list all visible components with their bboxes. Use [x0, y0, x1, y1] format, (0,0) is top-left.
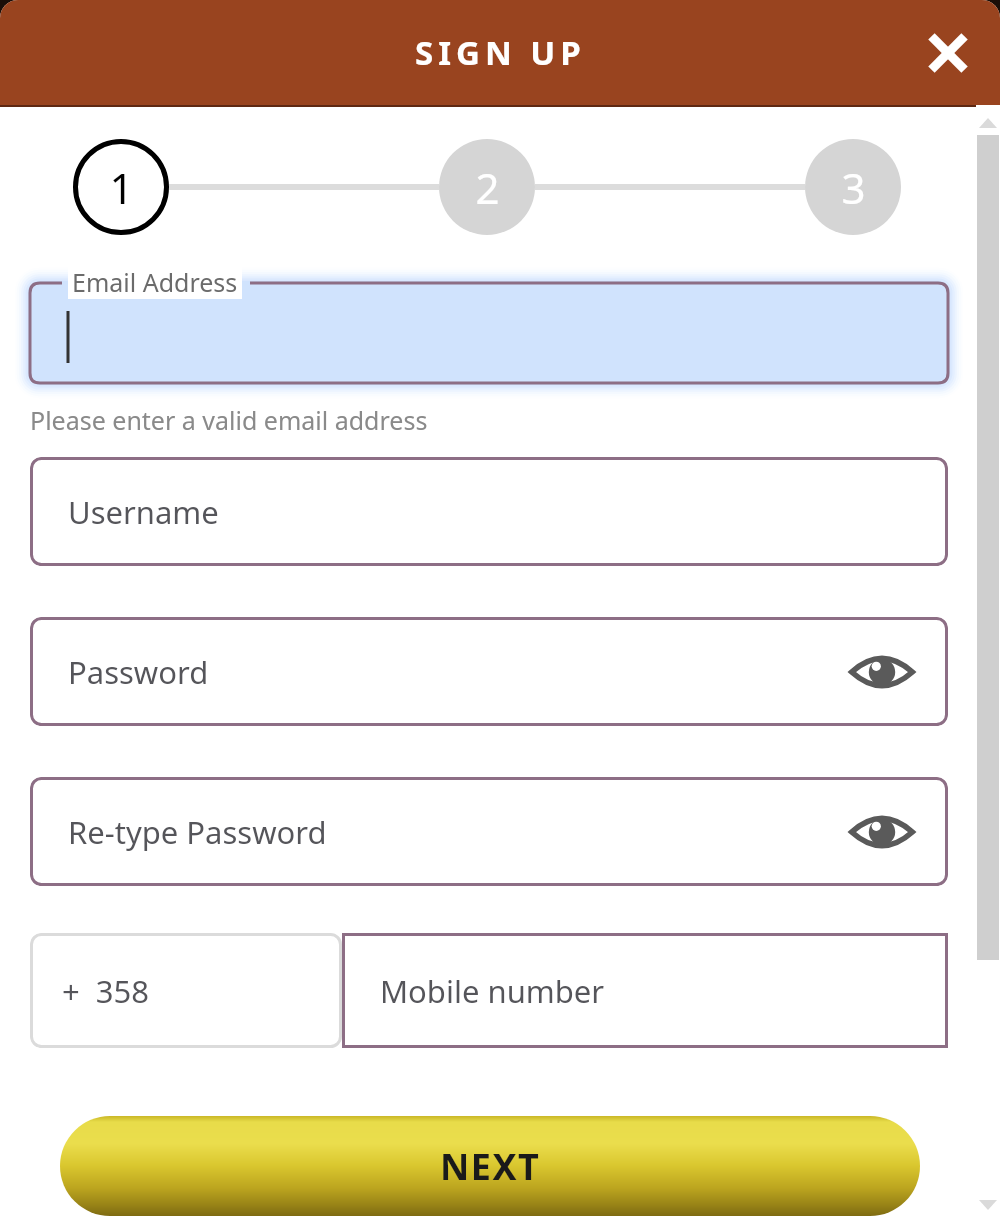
staticText: Re-type Password	[68, 811, 327, 853]
staticText: Email Address	[72, 265, 238, 299]
staticText: 1	[109, 159, 134, 216]
button[interactable]: Re-type Password	[30, 777, 948, 886]
staticText: Please enter a valid email address	[30, 403, 428, 437]
button[interactable]: 1	[73, 139, 169, 235]
staticText: 2	[475, 159, 500, 216]
staticText: Username	[68, 491, 219, 533]
button[interactable]: Username	[30, 457, 948, 566]
button[interactable]: Mobile number	[342, 933, 948, 1048]
staticText: NEXT	[440, 1142, 541, 1191]
button[interactable]: Password	[30, 617, 948, 726]
button[interactable]: 3	[805, 139, 901, 235]
staticText: + 358	[62, 970, 150, 1012]
button[interactable]: Close	[914, 19, 982, 87]
button[interactable]: Show password	[846, 796, 918, 868]
button[interactable]: NEXT	[60, 1116, 920, 1216]
staticText: 3	[841, 159, 866, 216]
staticText: SIGN UP	[415, 30, 586, 75]
button[interactable]: + 358	[30, 933, 342, 1048]
staticText: Password	[68, 651, 209, 693]
button[interactable]: 2	[439, 139, 535, 235]
button[interactable]: Show password	[846, 636, 918, 708]
staticText: Mobile number	[380, 970, 605, 1012]
